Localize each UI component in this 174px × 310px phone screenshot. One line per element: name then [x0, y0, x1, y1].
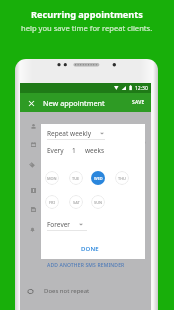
button[interactable]: Close — [25, 97, 37, 109]
staticText: Recurring appointments — [31, 8, 143, 21]
staticText: DONE — [81, 245, 99, 253]
staticText: New appointment — [43, 98, 105, 108]
staticText: Repeat weekly — [47, 129, 91, 138]
button[interactable]: MON — [45, 171, 59, 185]
button[interactable]: WED — [91, 171, 105, 185]
staticText: MON — [47, 176, 57, 181]
staticText: TUE — [72, 176, 80, 181]
staticText: 12:30 — [135, 85, 148, 92]
button[interactable]: TUE — [69, 171, 83, 185]
staticText: SUN — [94, 200, 103, 205]
staticText: 30 — [138, 138, 146, 147]
button[interactable]: SAT — [69, 195, 83, 209]
staticText: Every — [47, 146, 64, 155]
staticText: help you save time for repeat clients. — [21, 23, 153, 33]
staticText: 1 — [72, 146, 76, 155]
button[interactable]: ADD ANOTHER SMS REMINDER — [20, 262, 151, 269]
button[interactable]: Forever — [47, 220, 83, 229]
button[interactable]: SUN — [91, 195, 105, 209]
button[interactable]: Does not repeat — [20, 284, 151, 298]
button[interactable]: THU — [115, 171, 129, 185]
button[interactable]: SAVE — [130, 97, 147, 108]
staticText: THU — [118, 176, 126, 181]
button[interactable]: DONE — [78, 242, 102, 256]
staticText: WED — [94, 176, 103, 181]
staticText: SAVE — [132, 99, 145, 106]
staticText: weeks — [85, 146, 105, 155]
staticText: ADD ANOTHER SMS REMINDER — [47, 262, 125, 269]
staticText: FRI — [49, 200, 55, 205]
staticText: SAT — [73, 200, 80, 205]
staticText: Does not repeat — [44, 287, 90, 295]
button[interactable]: Repeat weekly — [47, 129, 104, 138]
button[interactable]: FRI — [45, 195, 59, 209]
staticText: Forever — [47, 220, 71, 229]
